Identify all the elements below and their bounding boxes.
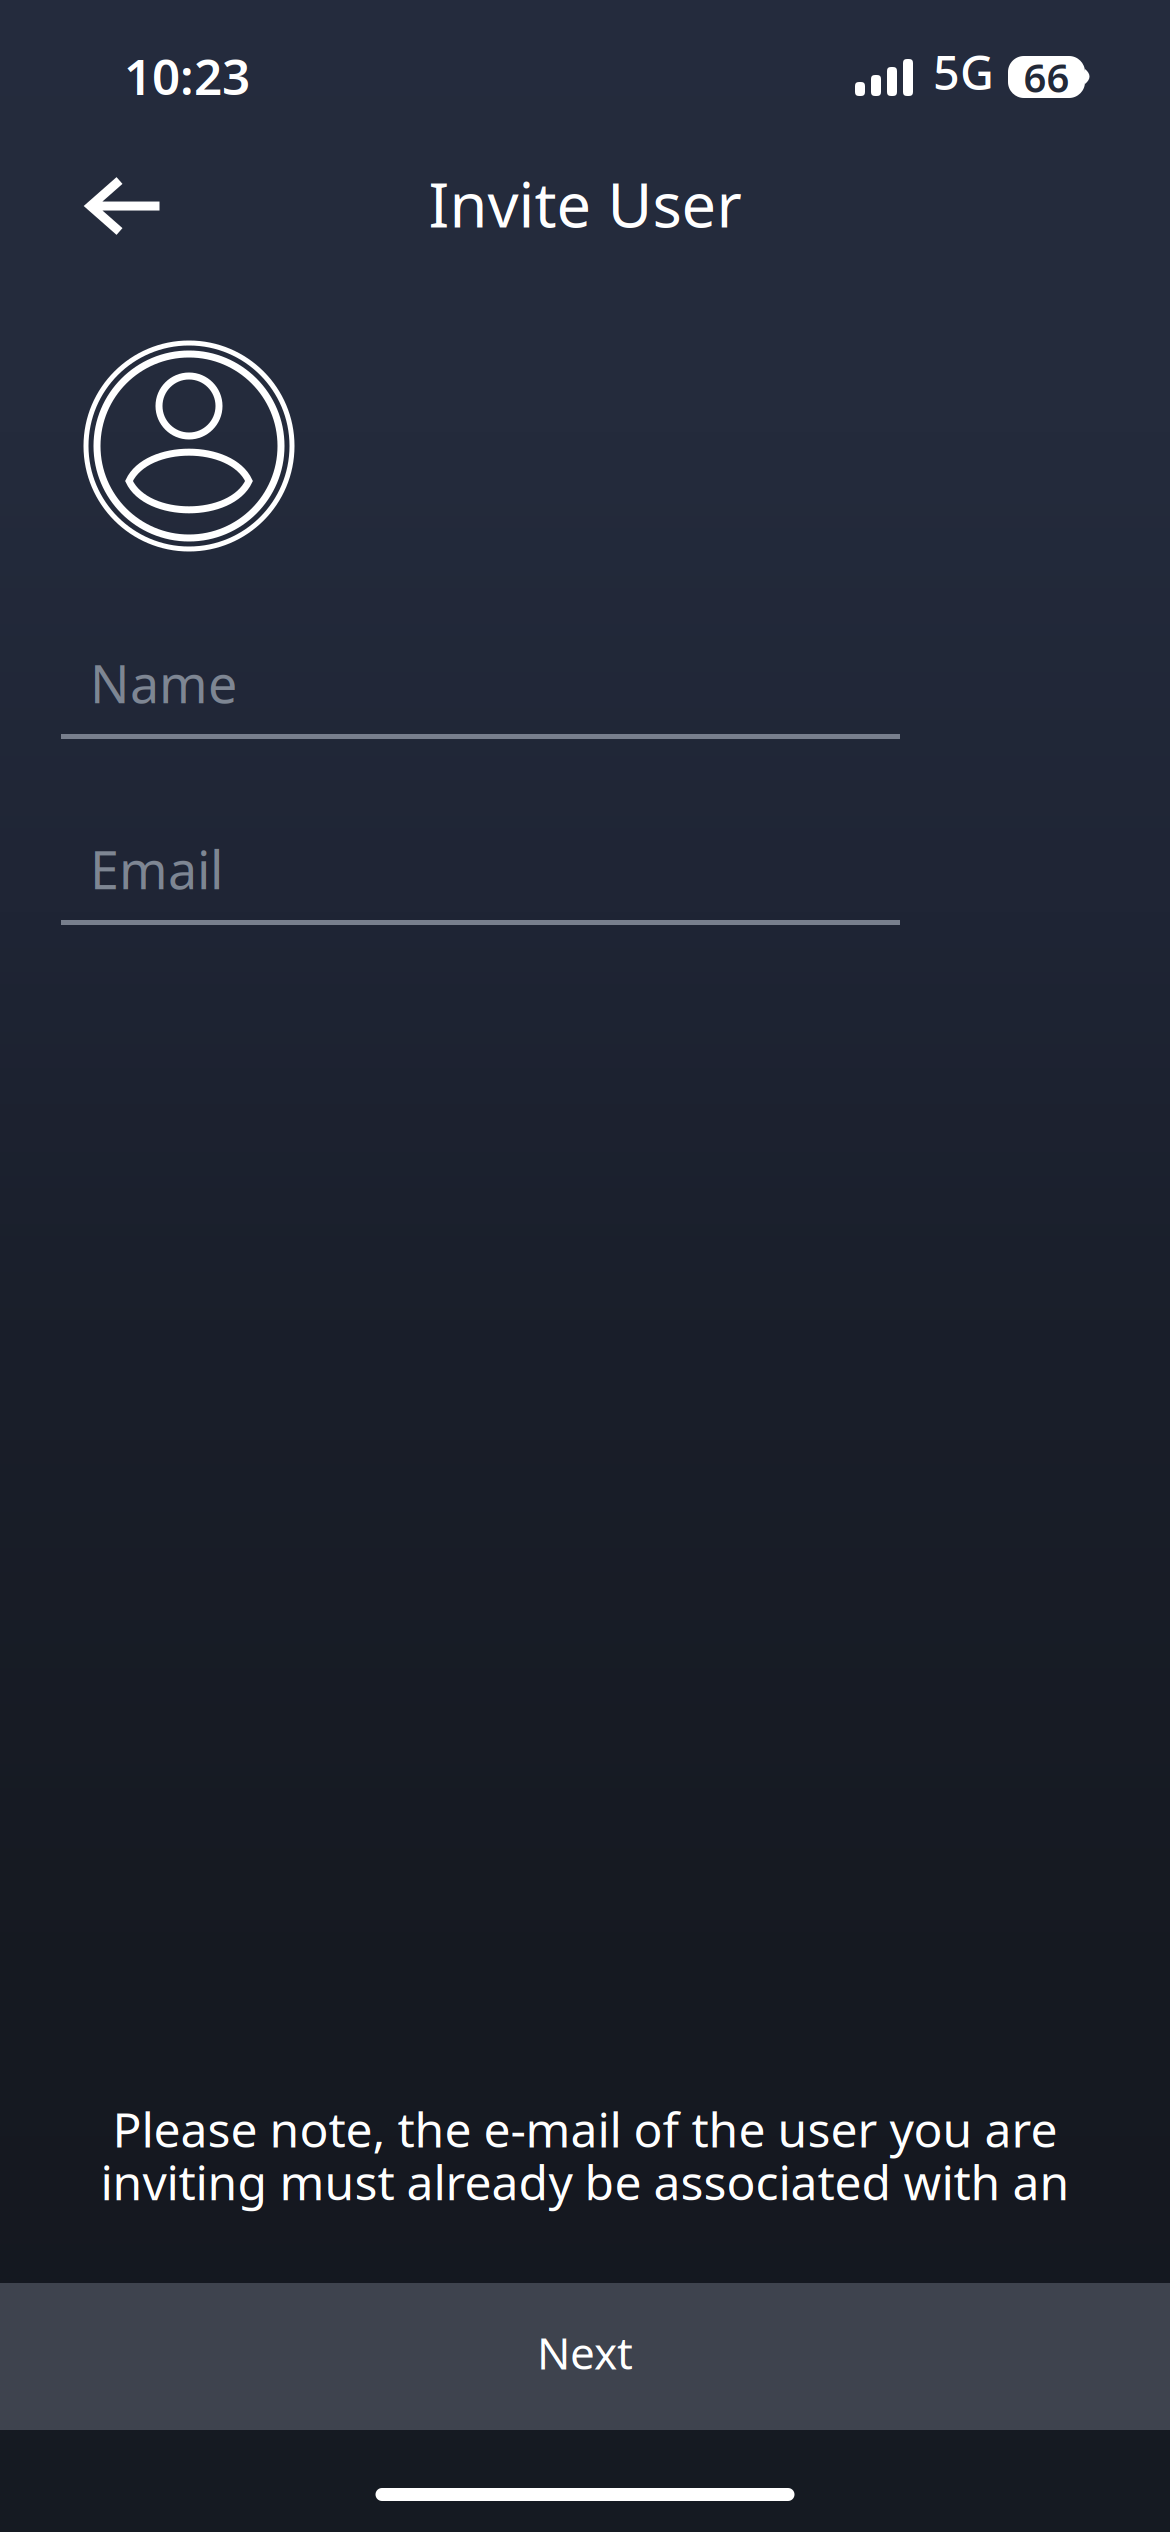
staticText: Next [537,2323,633,2382]
button[interactable]: Email [61,843,900,925]
staticText: 5G [933,41,994,103]
staticText: 10:23 [124,43,250,108]
staticText: Name [90,648,237,718]
staticText: Invite User [428,163,741,244]
staticText: 66 [1023,50,1069,103]
button[interactable]: Back [38,154,212,258]
staticText: Email [90,834,223,904]
button[interactable]: Next [0,2283,1170,2430]
button[interactable]: Name [61,657,900,739]
staticText: Please note, the e-mail of the user you … [112,2097,1057,2161]
staticText: inviting must already be associated with… [100,2150,1069,2213]
